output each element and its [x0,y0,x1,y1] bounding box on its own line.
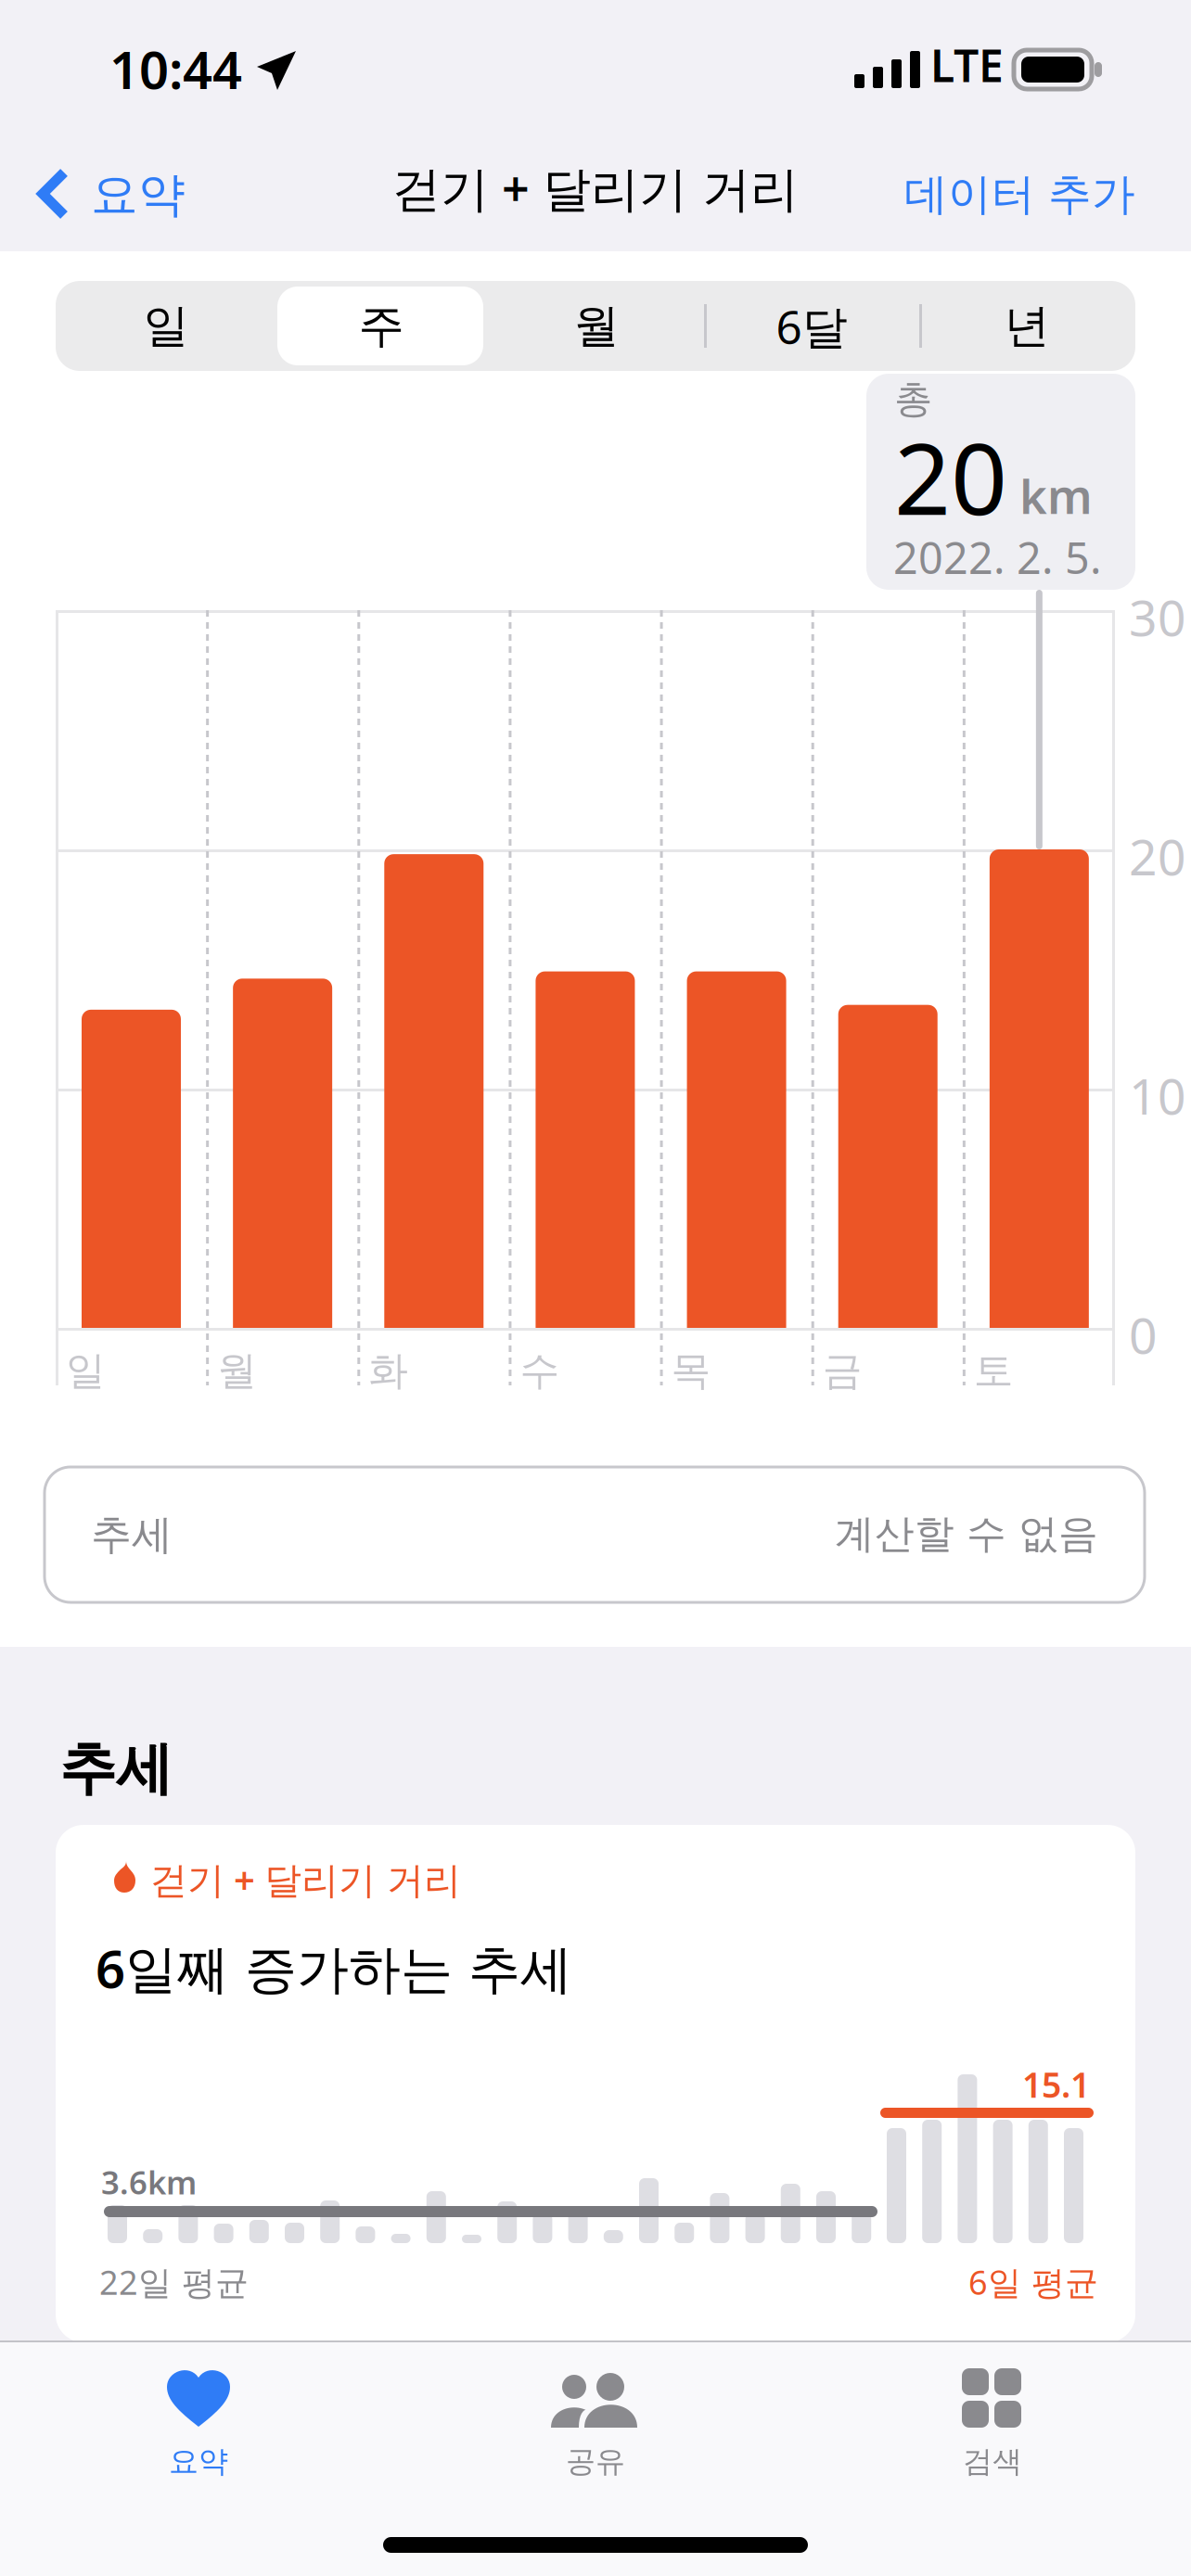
staticText: LTE [930,35,1004,94]
staticText: 데이터 추가 [904,168,1135,221]
button[interactable]: 주 [274,281,489,371]
staticText: 추세 [91,1510,173,1560]
button[interactable]: 공유 [397,2340,794,2489]
staticText: 10 [1129,1063,1186,1128]
staticText: 22일 평균 [99,2260,249,2304]
staticText: 15.1 [1022,2061,1090,2107]
staticText: 총 [894,376,932,423]
staticText: 년 [1004,298,1050,354]
staticText: 20 [894,411,1007,542]
staticText: km [1019,465,1093,527]
button[interactable]: 검색 [794,2340,1191,2489]
staticText: 20 [1129,823,1186,889]
staticText: 0 [1129,1302,1158,1368]
staticText: 화 [369,1346,408,1395]
button[interactable]: 데이터 추가 [876,142,1135,235]
staticText: 걷기 + 달리기 거리 [392,156,799,220]
staticText: 2022. 2. 5. [893,529,1102,586]
staticText: 요약 [169,2443,228,2480]
button[interactable]: 월 [489,281,704,371]
button[interactable]: 일 [58,281,274,371]
staticText: 3.6km [101,2161,197,2203]
staticText: 주 [359,298,404,354]
staticText: 6일 평균 [968,2260,1098,2304]
staticText: 월 [574,298,619,354]
staticText: 일 [143,298,189,354]
staticText: 계산할 수 없음 [835,1510,1098,1558]
staticText: 요약 [91,166,186,224]
staticText: 공유 [566,2443,625,2480]
staticText: 6일째 증가하는 추세 [96,1933,572,2002]
staticText: 금 [822,1346,862,1395]
staticText: 일 [66,1346,106,1395]
button[interactable]: 요약 [0,2340,397,2489]
staticText: 30 [1129,584,1186,650]
button[interactable]: 6달 [704,281,919,371]
staticText: 월 [217,1346,257,1395]
button[interactable]: 추세 [45,1467,1145,1602]
staticText: 10:44 [109,34,242,103]
staticText: 추세 [59,1734,173,1804]
staticText: 검색 [963,2443,1022,2480]
button[interactable]: 요약 [33,142,210,235]
staticText: 수 [520,1346,560,1395]
staticText: 6달 [776,296,847,356]
staticText: 목 [671,1346,711,1395]
staticText: 토 [974,1346,1014,1395]
staticText: 걷기 + 달리기 거리 [150,1855,461,1904]
button[interactable]: 년 [919,281,1134,371]
